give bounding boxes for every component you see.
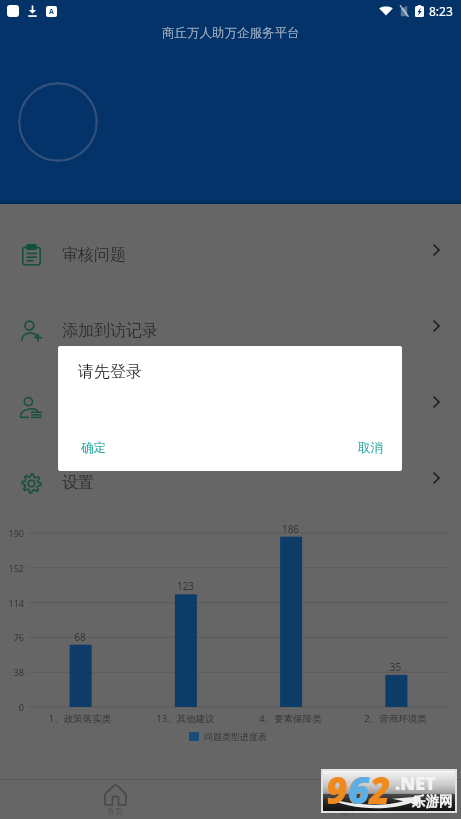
staticText: 请先登录 xyxy=(78,362,142,382)
staticText: 8:23 xyxy=(429,3,453,19)
staticText: 68 xyxy=(27,630,133,644)
staticText: 设置 xyxy=(62,473,94,493)
button[interactable]: 审核问题 xyxy=(0,217,461,293)
staticText: 76 xyxy=(0,631,24,643)
staticText: .NET xyxy=(395,771,436,796)
staticText: 1、政策落实类 xyxy=(27,712,133,725)
staticText: 乐游网 xyxy=(412,793,453,810)
staticText: 取消 xyxy=(358,440,383,456)
button[interactable]: 首页 xyxy=(0,780,230,816)
staticText: 38 xyxy=(0,666,24,678)
button[interactable]: 确定 xyxy=(69,430,118,466)
button[interactable]: 到访记录 xyxy=(0,369,461,445)
staticText: A xyxy=(49,7,54,17)
button[interactable]: 设置 xyxy=(0,445,461,521)
staticText: 商丘万人助万企服务平台 xyxy=(162,25,300,41)
staticText: 6 xyxy=(348,764,370,804)
button[interactable]: 头像 Avatar xyxy=(18,82,98,162)
staticText: 问题类型进度表 xyxy=(204,731,267,742)
staticText: 152 xyxy=(0,562,24,574)
staticText: 962 xyxy=(326,764,391,804)
staticText: 2、营商环境类 xyxy=(343,712,448,725)
staticText: 我的 xyxy=(338,806,354,816)
staticText: 0 xyxy=(0,701,24,713)
staticText: 13、其他建议 xyxy=(133,712,238,725)
staticText: 114 xyxy=(0,597,24,609)
staticText: 首页 xyxy=(107,806,123,816)
staticText: 审核问题 xyxy=(62,245,126,265)
button[interactable]: 我的 xyxy=(230,780,461,816)
staticText: 186 xyxy=(238,522,343,536)
staticText: 123 xyxy=(133,579,238,593)
staticText: 确定 xyxy=(81,440,106,456)
button[interactable]: 取消 xyxy=(346,430,395,466)
button[interactable]: 添加到访记录 xyxy=(0,293,461,369)
staticText: 4、要素保障类 xyxy=(238,712,343,725)
staticText: 35 xyxy=(343,660,448,674)
staticText: 190 xyxy=(0,527,24,539)
staticText: 添加到访记录 xyxy=(62,321,158,341)
